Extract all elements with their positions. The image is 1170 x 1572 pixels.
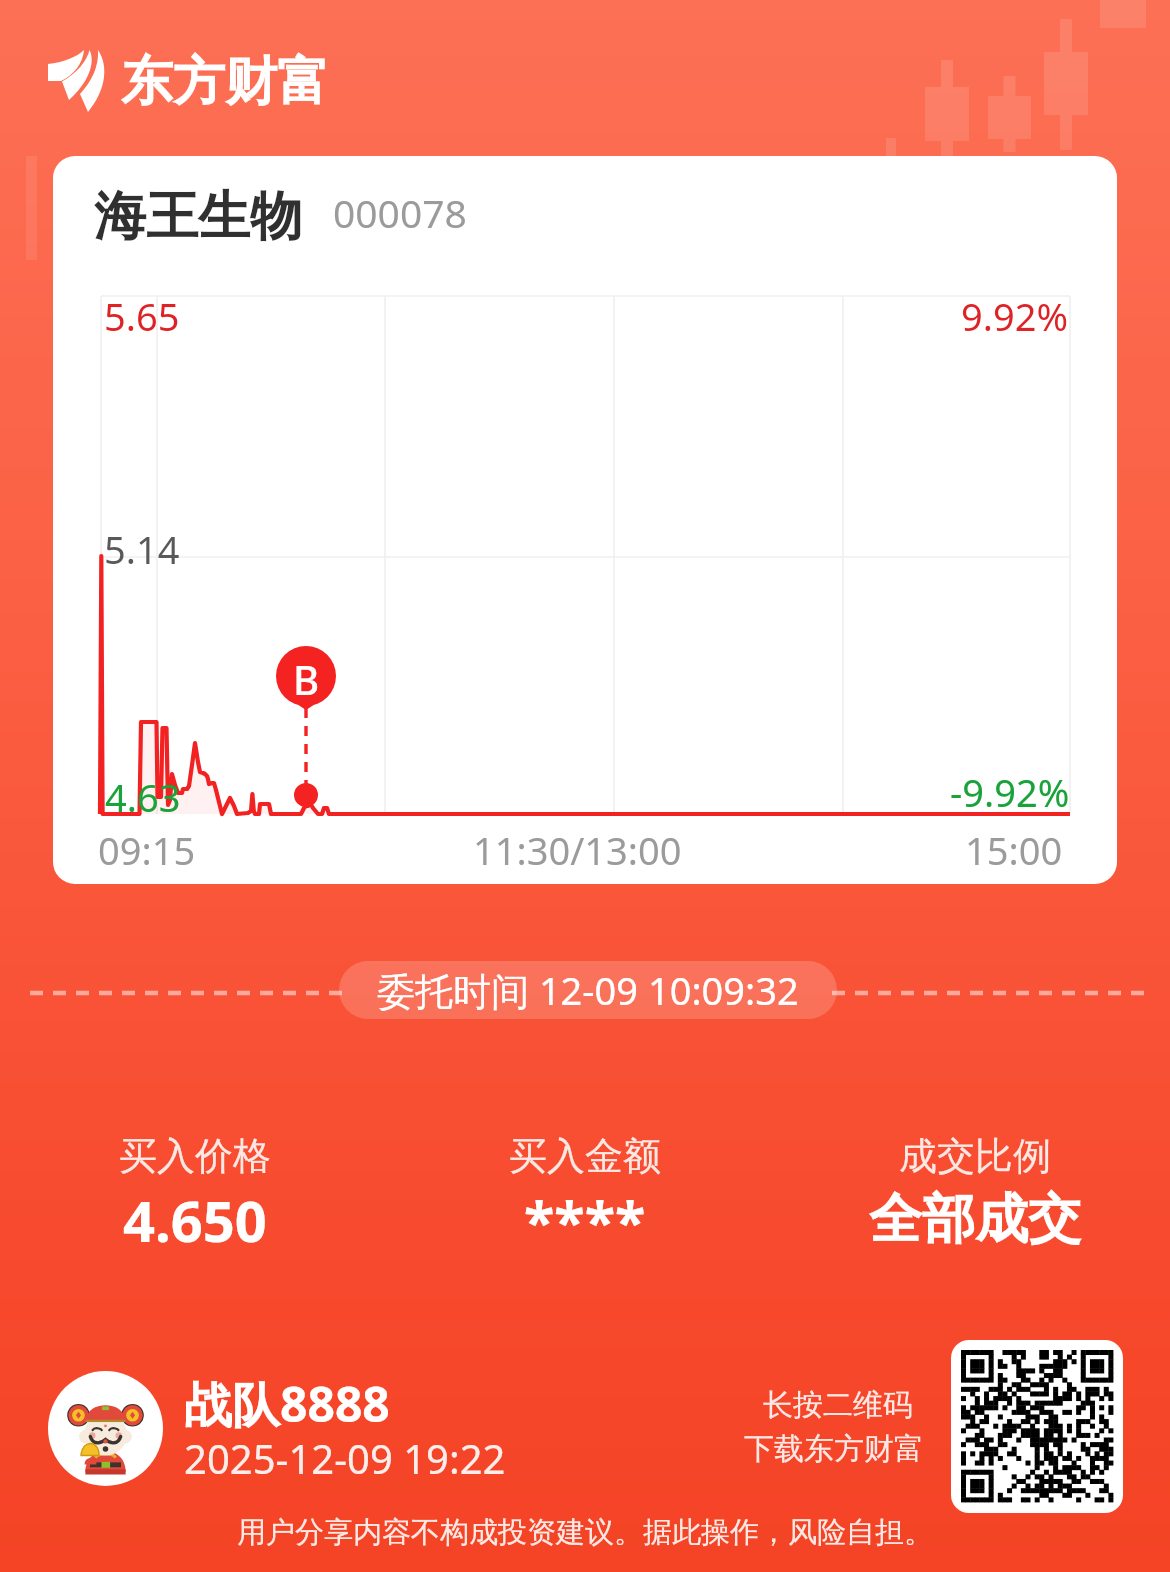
staticText: 下载东方财富 xyxy=(744,1430,924,1468)
button[interactable]: 买入价格 xyxy=(0,1132,390,1258)
staticText: 9.92% xyxy=(961,290,1068,342)
staticText: 买入价格 xyxy=(119,1132,271,1180)
staticText: 委托时间 12-09 10:09:32 xyxy=(377,964,799,1016)
staticText: 4.650 xyxy=(123,1182,267,1258)
button[interactable]: 买入金额 xyxy=(390,1132,780,1258)
staticText: 5.65 xyxy=(104,290,180,342)
staticText: 15:00 xyxy=(965,824,1063,876)
button[interactable]: 成交比例 xyxy=(780,1132,1170,1253)
staticText: 买入金额 xyxy=(509,1132,661,1180)
staticText: 东方财富 xyxy=(121,49,329,115)
staticText: 全部成交 xyxy=(869,1186,1081,1253)
button[interactable]: 委托时间 12-09 10:09:32 xyxy=(339,961,837,1019)
staticText: -9.92% xyxy=(950,766,1070,818)
staticText: 长按二维码 xyxy=(763,1386,913,1424)
staticText: 战队8888 xyxy=(184,1371,390,1437)
staticText: 用户分享内容不构成投资建议。据此操作，风险自担。 xyxy=(0,1514,1170,1551)
staticText: 5.14 xyxy=(104,523,180,575)
staticText: 成交比例 xyxy=(899,1132,1051,1180)
staticText: 2025-12-09 19:22 xyxy=(184,1431,506,1485)
staticText: 09:15 xyxy=(98,824,196,876)
button[interactable]: 海王生物 xyxy=(53,156,1117,884)
button[interactable]: QR code to download app xyxy=(951,1340,1123,1513)
staticText: 海王生物 xyxy=(94,184,302,250)
staticText: 11:30/13:00 xyxy=(473,824,682,876)
button[interactable]: User avatar xyxy=(48,1371,163,1486)
staticText: 000078 xyxy=(333,186,467,239)
staticText: B xyxy=(293,652,320,706)
staticText: **** xyxy=(524,1182,646,1258)
staticText: 4.63 xyxy=(105,771,181,823)
